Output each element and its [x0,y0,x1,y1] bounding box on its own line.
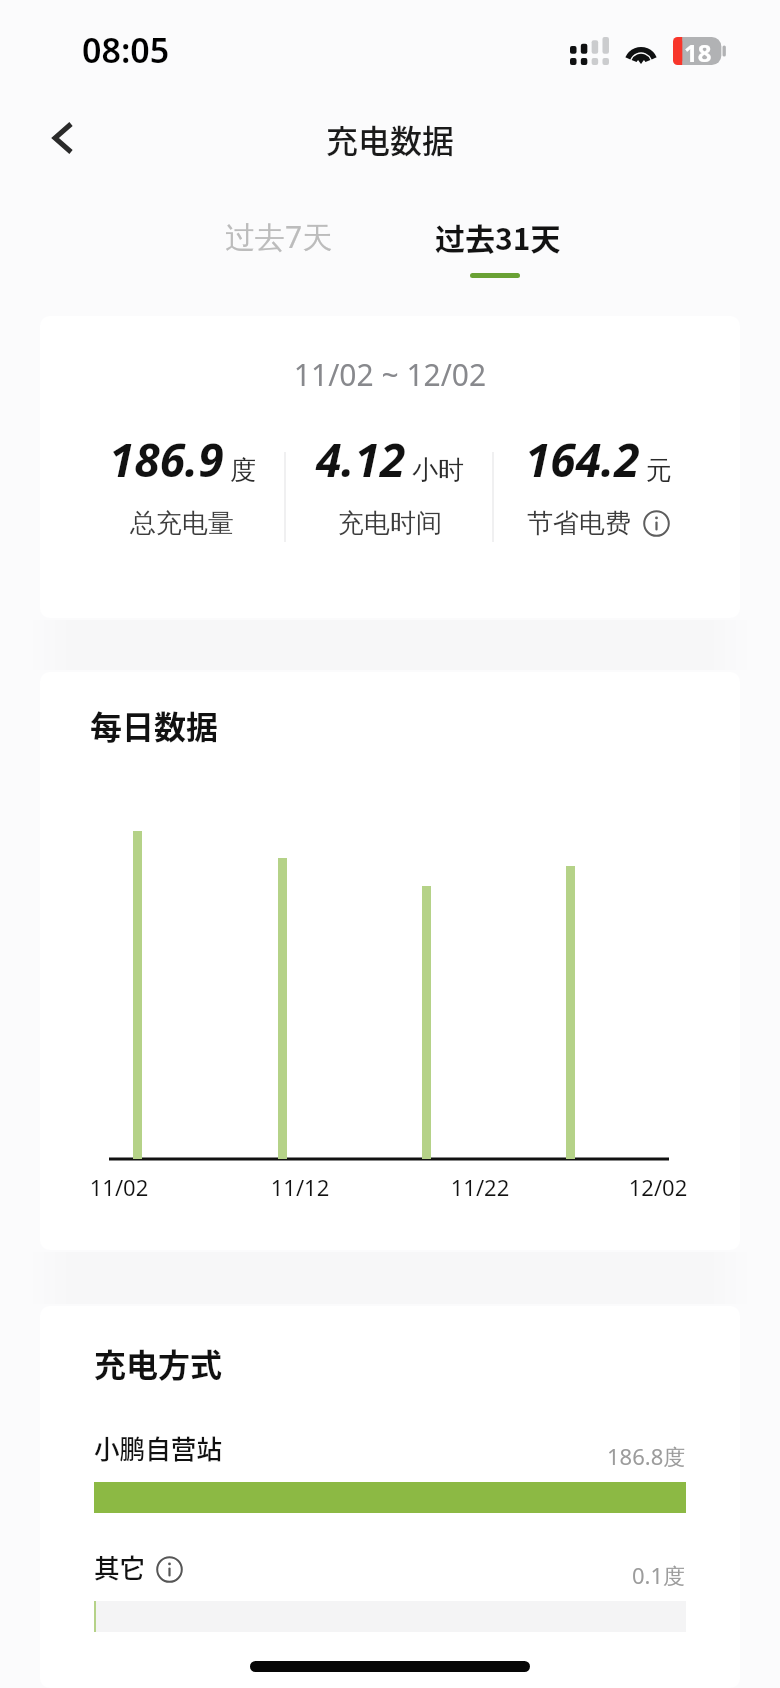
staticText: 11/02 ~ 12/02 [40,354,740,395]
staticText: 总充电量 [130,507,234,540]
staticText: 164.2 [525,428,640,491]
staticText: 充电方式 [94,1340,223,1386]
staticText: 其它 [94,1548,146,1585]
staticText: 小鹏自营站 [94,1429,222,1466]
staticText: 186.9 [109,428,224,491]
staticText: 12/02 [624,1172,692,1202]
staticText: 过去31天 [435,215,561,258]
staticText: 11/02 [85,1172,153,1202]
button[interactable]: 过去7天 [196,190,362,282]
staticText: 4.12 [316,428,406,491]
staticText: 充电时间 [338,507,442,540]
staticText: 充电数据 [326,116,455,162]
staticText: 0.1度 [632,1560,686,1590]
staticText: 每日数据 [90,702,219,748]
staticText: 18 [684,36,712,64]
staticText: 11/22 [446,1172,514,1202]
staticText: 节省电费 [527,507,631,540]
staticText: 小时 [412,454,464,487]
staticText: 186.8度 [607,1441,686,1471]
staticText: 11/12 [266,1172,334,1202]
staticText: 元 [646,454,672,487]
staticText: 度 [230,454,256,487]
button[interactable]: Back [17,96,109,180]
staticText: 08:05 [82,27,170,73]
staticText: 过去7天 [225,216,333,257]
button[interactable]: 过去31天 [430,190,566,282]
